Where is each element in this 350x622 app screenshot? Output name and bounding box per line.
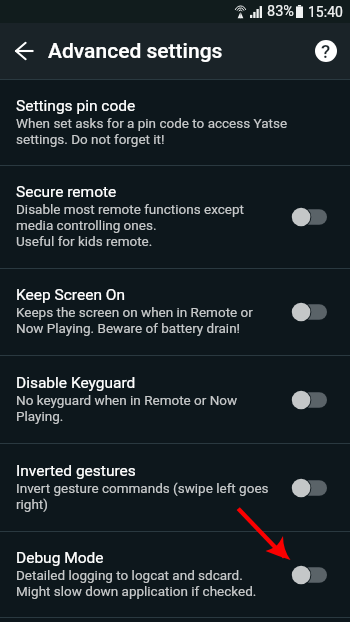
staticText: Settings pin code [16, 97, 136, 115]
button[interactable]: Toggle [292, 295, 340, 329]
staticText: 15:40 [308, 4, 343, 20]
button[interactable]: Debug Mode [0, 532, 350, 618]
staticText: Debug Mode [16, 549, 104, 567]
staticText: Inverted gestures [16, 462, 136, 480]
staticText: Keeps the screen on when in Remote or No… [16, 304, 268, 336]
staticText: Invert gesture commands (swipe left goes… [16, 480, 274, 512]
staticText: Keep Screen On [16, 286, 126, 304]
staticText: Detailed logging to logcat and sdcard. M… [16, 567, 268, 599]
staticText: Secure remote [16, 183, 117, 201]
button[interactable]: Toggle [292, 558, 340, 592]
staticText: No keyguard when in Remote or Now Playin… [16, 392, 268, 424]
button[interactable]: Toggle [292, 471, 340, 505]
staticText: ? [321, 40, 331, 62]
staticText: 83% [267, 3, 294, 20]
button[interactable]: Keep Screen On [0, 269, 350, 356]
button[interactable]: Toggle [292, 200, 340, 234]
button[interactable]: Secure remote [0, 166, 350, 269]
button[interactable]: Back [0, 27, 48, 75]
staticText: When set asks for a pin code to access Y… [16, 115, 292, 147]
staticText: Disable Keyguard [16, 374, 136, 392]
staticText: Disable most remote functions except med… [16, 201, 266, 249]
button[interactable]: Disable Keyguard [0, 356, 350, 444]
staticText: Advanced settings [48, 39, 223, 64]
button[interactable]: Help [302, 27, 350, 75]
button[interactable]: Settings pin code [0, 80, 350, 166]
button[interactable]: Inverted gestures [0, 444, 350, 532]
button[interactable]: Toggle [292, 383, 340, 417]
